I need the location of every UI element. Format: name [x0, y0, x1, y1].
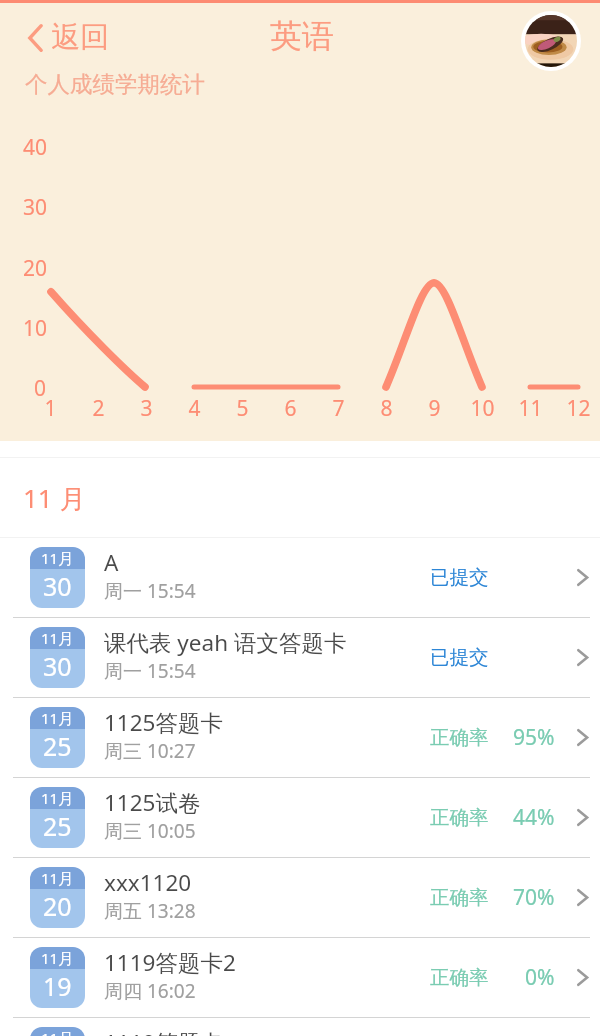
button[interactable]: 11月 [0, 538, 600, 617]
staticText: 0 [34, 374, 47, 403]
staticText: 周三 10:27 [104, 738, 196, 764]
staticText: 0% [525, 963, 555, 992]
staticText: 11 月 [23, 480, 86, 516]
staticText: 11月 [41, 548, 74, 568]
button[interactable]: 返回 [22, 14, 115, 61]
staticText: 5 [236, 394, 249, 423]
staticText: 4 [188, 394, 201, 423]
staticText: xxx1120 [104, 867, 192, 898]
staticText: 10 [470, 394, 495, 423]
staticText: 11月 [41, 708, 74, 728]
staticText: 正确率 [430, 725, 489, 750]
staticText: 1125答题卡 [104, 707, 223, 738]
staticText: 11 [518, 394, 543, 423]
button[interactable]: 11月 [0, 938, 600, 1017]
button[interactable]: 11月 [0, 778, 600, 857]
staticText: 11月 [41, 1028, 74, 1036]
button[interactable]: 11月 [0, 698, 600, 777]
button[interactable]: Profile [521, 11, 581, 71]
staticText: 1119答题卡 [104, 1027, 223, 1036]
staticText: 3 [140, 394, 153, 423]
staticText: 25 [43, 809, 72, 843]
staticText: 正确率 [430, 805, 489, 830]
staticText: 20 [43, 889, 72, 923]
staticText: 12 [566, 394, 591, 423]
staticText: 25 [43, 729, 72, 763]
staticText: 30 [43, 569, 72, 603]
staticText: 个人成绩学期统计 [25, 70, 205, 98]
staticText: 11月 [41, 868, 74, 888]
staticText: 10 [23, 314, 47, 343]
staticText: 40 [23, 133, 47, 162]
staticText: 1119答题卡2 [104, 947, 236, 978]
staticText: 2 [92, 394, 105, 423]
staticText: 7 [332, 394, 345, 423]
staticText: 11月 [41, 948, 74, 968]
staticText: 8 [380, 394, 393, 423]
staticText: 30 [43, 649, 72, 683]
staticText: 11月 [41, 788, 74, 808]
staticText: 30 [23, 193, 47, 222]
staticText: 英语 [270, 16, 334, 56]
staticText: A [104, 547, 119, 578]
staticText: 正确率 [430, 965, 489, 990]
staticText: 9 [428, 394, 441, 423]
staticText: 周四 16:02 [104, 978, 196, 1004]
staticText: 1 [44, 394, 57, 423]
staticText: 1125试卷 [104, 787, 201, 818]
staticText: 周三 10:05 [104, 818, 196, 844]
staticText: 44% [513, 803, 555, 832]
staticText: 已提交 [430, 565, 489, 590]
staticText: 11月 [41, 628, 74, 648]
staticText: 课代表 yeah 语文答题卡 [104, 627, 347, 658]
button[interactable]: 11月 [0, 858, 600, 937]
staticText: 70% [513, 883, 555, 912]
staticText: 周一 15:54 [104, 578, 196, 604]
staticText: 周一 15:54 [104, 658, 196, 684]
staticText: 6 [284, 394, 297, 423]
staticText: 已提交 [430, 645, 489, 670]
staticText: 19 [43, 969, 72, 1003]
staticText: 周五 13:28 [104, 898, 196, 924]
staticText: 正确率 [430, 885, 489, 910]
staticText: 返回 [51, 19, 109, 56]
staticText: 95% [513, 723, 555, 752]
staticText: 20 [23, 254, 47, 283]
button[interactable]: 11月 [0, 1018, 600, 1036]
button[interactable]: 11月 [0, 618, 600, 697]
